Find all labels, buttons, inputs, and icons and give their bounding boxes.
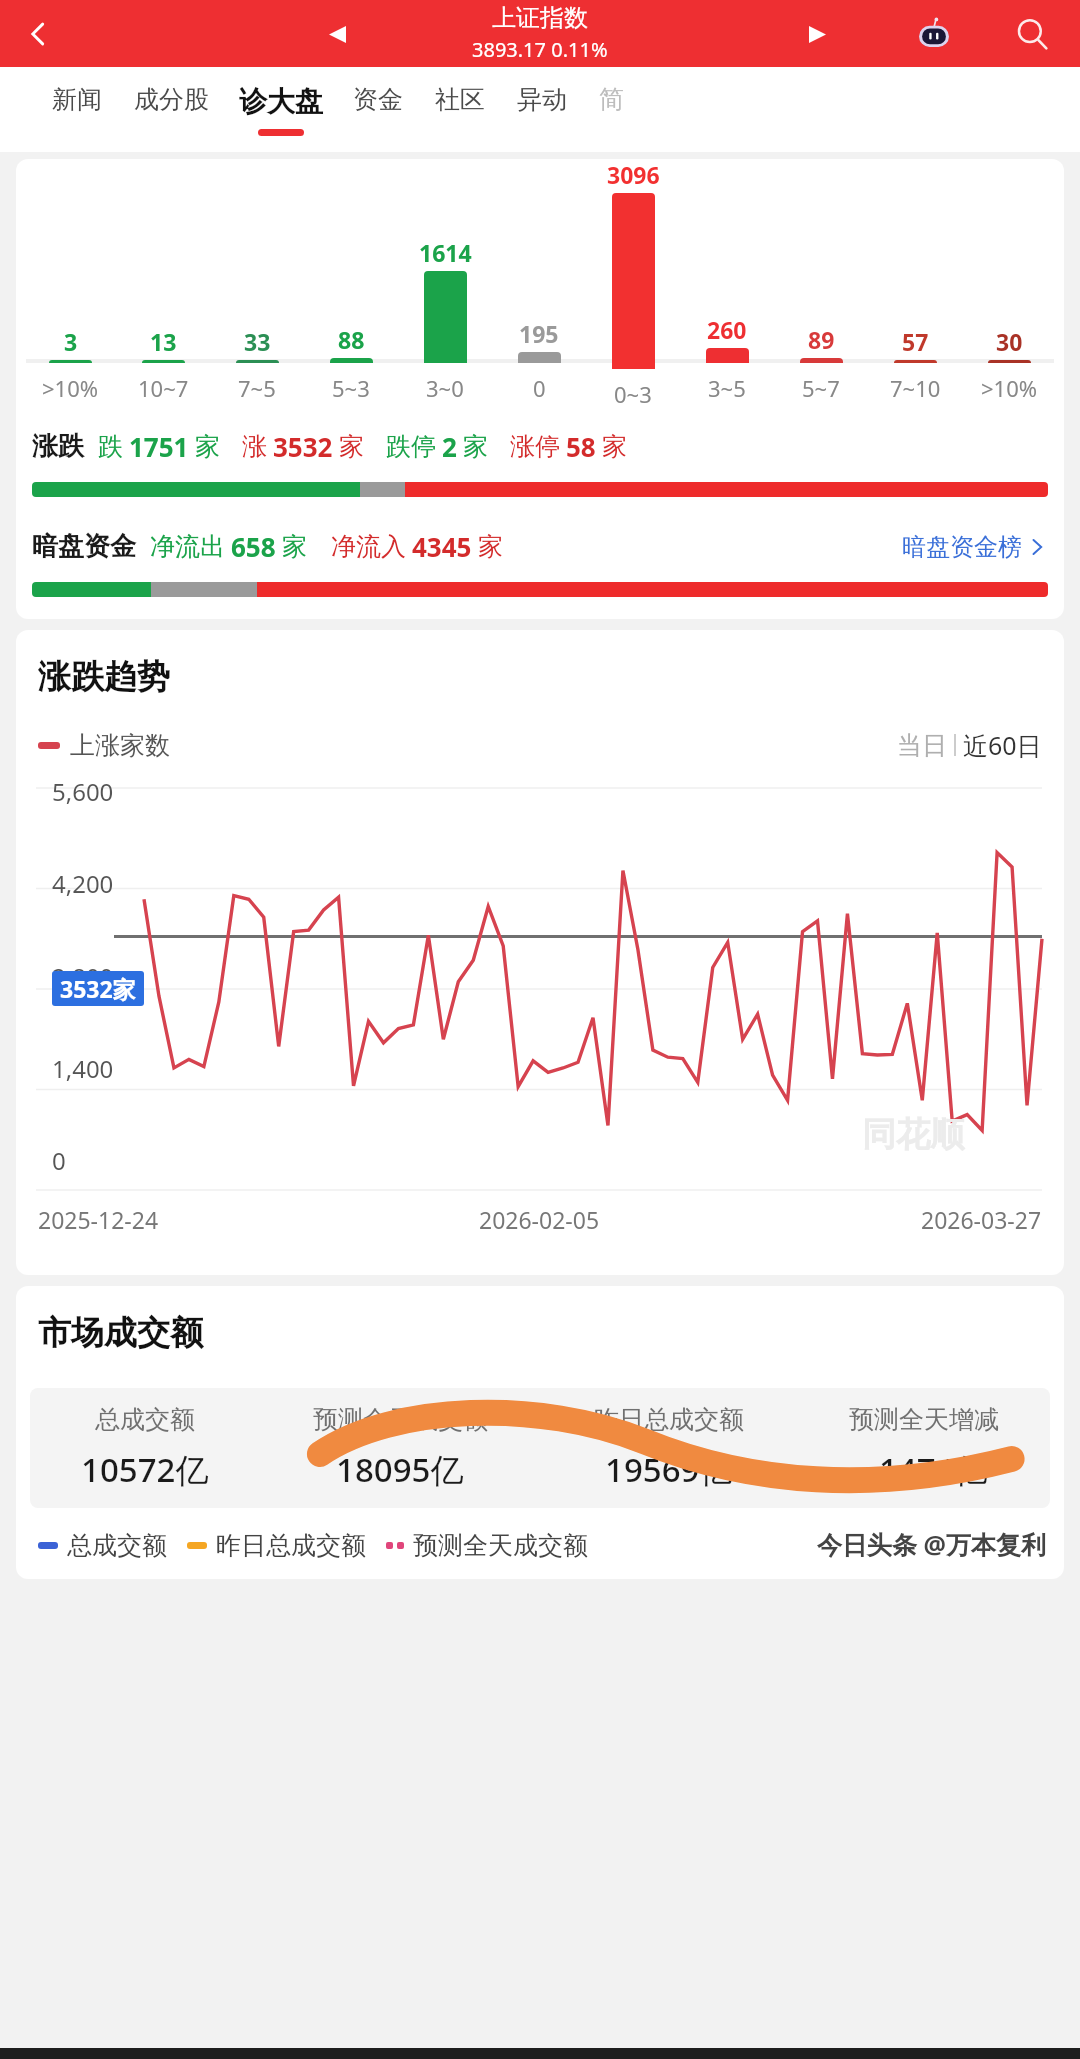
- button[interactable]: 简: [583, 67, 640, 115]
- staticText: 暗盘资金榜: [902, 532, 1022, 562]
- staticText: 暗盘资金: [32, 530, 136, 563]
- staticText: 昨日总成交额: [594, 1404, 744, 1435]
- staticText: 0~3: [614, 379, 652, 409]
- staticText: 3~0: [426, 373, 464, 403]
- staticText: 2: [442, 429, 457, 464]
- staticText: 19569亿: [605, 1447, 733, 1492]
- staticText: 涨: [242, 431, 267, 462]
- staticText: 7~10: [890, 373, 941, 403]
- button[interactable]: 资金: [337, 67, 419, 115]
- staticText: 家: [602, 431, 627, 462]
- staticText: 社区: [435, 84, 485, 115]
- staticText: 1614: [419, 237, 472, 268]
- staticText: 4,200: [52, 867, 114, 900]
- staticText: 净流出: [150, 531, 225, 562]
- staticText: 净流入: [331, 531, 406, 562]
- staticText: 资金: [353, 84, 403, 115]
- button[interactable]: Search: [1006, 8, 1058, 60]
- button[interactable]: 新闻: [36, 67, 118, 115]
- staticText: 预测全天成交额: [413, 1530, 588, 1561]
- staticText: 总成交额: [67, 1530, 167, 1561]
- staticText: 预测全天增减: [849, 1404, 999, 1435]
- button[interactable]: Back: [14, 10, 62, 58]
- staticText: 3~5: [708, 373, 746, 403]
- staticText: 新闻: [52, 84, 102, 115]
- staticText: 4345: [412, 529, 472, 564]
- staticText: 上证指数: [492, 3, 588, 33]
- staticText: 预测全天成交额: [313, 1404, 488, 1435]
- staticText: 658: [231, 529, 276, 564]
- staticText: 同花顺: [862, 1113, 964, 1156]
- staticText: 家: [195, 431, 220, 462]
- staticText: 成分股: [134, 84, 209, 115]
- staticText: 上涨家数: [70, 730, 170, 761]
- staticText: 33: [244, 326, 271, 357]
- staticText: 跌: [98, 431, 123, 462]
- staticText: >10%: [981, 373, 1038, 403]
- staticText: 13: [150, 326, 177, 357]
- staticText: 2025-12-24: [38, 1204, 159, 1235]
- staticText: 总成交额: [95, 1404, 195, 1435]
- staticText: 2,800: [52, 960, 114, 993]
- staticText: 简: [599, 84, 624, 115]
- staticText: 260: [707, 314, 747, 345]
- staticText: 88: [338, 324, 365, 355]
- staticText: 家: [339, 431, 364, 462]
- button[interactable]: 成分股: [118, 67, 225, 115]
- button[interactable]: 涨跌: [32, 429, 1064, 464]
- staticText: 3096: [607, 159, 660, 190]
- staticText: 3532家: [60, 973, 136, 1004]
- staticText: 涨跌趋势: [38, 656, 170, 698]
- staticText: −1474亿: [860, 1447, 988, 1492]
- staticText: 2026-03-27: [921, 1204, 1042, 1235]
- staticText: 10~7: [138, 373, 189, 403]
- staticText: 57: [902, 326, 929, 357]
- staticText: 18095亿: [336, 1447, 464, 1492]
- button[interactable]: 暗盘资金: [32, 529, 1044, 564]
- staticText: 今日头条 @万本复利: [817, 1527, 1046, 1561]
- staticText: >10%: [42, 373, 99, 403]
- staticText: 近60日: [963, 728, 1042, 762]
- staticText: 3532: [273, 429, 333, 464]
- staticText: 5~3: [332, 373, 370, 403]
- staticText: 当日: [897, 730, 947, 761]
- staticText: 昨日总成交额: [216, 1530, 366, 1561]
- button[interactable]: Next: [796, 13, 838, 55]
- staticText: 7~5: [238, 373, 276, 403]
- staticText: 1,400: [52, 1052, 114, 1085]
- staticText: 0: [533, 373, 546, 403]
- button[interactable]: 异动: [501, 67, 583, 115]
- staticText: 诊大盘: [239, 84, 323, 119]
- button[interactable]: AI assistant: [910, 10, 958, 58]
- staticText: 5~7: [802, 373, 840, 403]
- staticText: 30: [996, 326, 1023, 357]
- staticText: 5,600: [52, 775, 114, 808]
- staticText: 10572亿: [81, 1447, 209, 1492]
- staticText: 195: [519, 318, 559, 349]
- staticText: 家: [463, 431, 488, 462]
- staticText: 3893.17 0.11%: [472, 36, 608, 63]
- staticText: 89: [808, 324, 835, 355]
- button[interactable]: 诊大盘: [225, 67, 337, 136]
- staticText: 市场成交额: [38, 1312, 203, 1354]
- button[interactable]: 社区: [419, 67, 501, 115]
- button[interactable]: 当日: [897, 728, 1042, 762]
- staticText: 家: [282, 531, 307, 562]
- staticText: 0: [52, 1144, 66, 1177]
- staticText: 2026-02-05: [479, 1204, 600, 1235]
- button[interactable]: Previous: [316, 13, 358, 55]
- staticText: 涨停: [510, 431, 560, 462]
- staticText: 1751: [129, 429, 189, 464]
- staticText: 异动: [517, 84, 567, 115]
- staticText: 3: [64, 326, 78, 357]
- staticText: 家: [478, 531, 503, 562]
- staticText: 跌停: [386, 431, 436, 462]
- staticText: 58: [566, 429, 596, 464]
- staticText: 涨跌: [32, 430, 84, 463]
